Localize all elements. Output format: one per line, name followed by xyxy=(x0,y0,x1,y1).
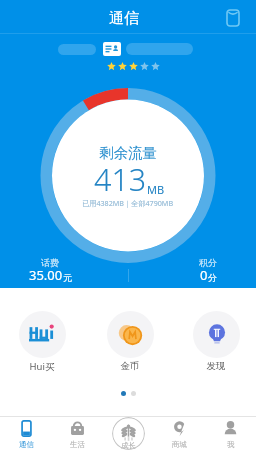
staticText: 发现 xyxy=(192,360,240,372)
button[interactable]: 积分 xyxy=(178,257,238,286)
staticText: 0 xyxy=(200,266,208,284)
button[interactable]: Account card xyxy=(222,7,244,29)
button[interactable]: 发现 xyxy=(192,311,240,372)
staticText: 元 xyxy=(63,272,72,283)
staticText: 话费 xyxy=(41,257,59,268)
staticText: 通信 xyxy=(19,440,34,449)
staticText: 积分 xyxy=(199,257,217,268)
staticText: MB xyxy=(147,182,165,197)
staticText: 生活 xyxy=(70,440,85,449)
staticText: Hui买 xyxy=(18,360,66,373)
button[interactable]: 成长 xyxy=(103,416,154,451)
staticText: 413 xyxy=(94,158,147,200)
staticText: 商城 xyxy=(172,440,187,449)
button[interactable]: 商城 xyxy=(154,416,205,451)
button[interactable]: 金币 xyxy=(106,311,154,372)
staticText: 我 xyxy=(227,440,235,449)
staticText: 成长 xyxy=(121,441,136,450)
staticText: 已用4382MB｜全部4790MB xyxy=(82,198,174,208)
staticText: 通信 xyxy=(109,9,139,28)
staticText: 剩余流量 xyxy=(99,144,157,162)
button[interactable]: 通信 xyxy=(0,416,52,451)
button[interactable]: Hui买 xyxy=(18,311,66,373)
button[interactable]: 话费 xyxy=(20,257,80,286)
staticText: 分 xyxy=(208,272,217,283)
button[interactable]: 我 xyxy=(205,416,256,451)
staticText: 金币 xyxy=(106,360,154,372)
staticText: 35.00 xyxy=(29,266,63,284)
button[interactable]: 生活 xyxy=(52,416,103,451)
